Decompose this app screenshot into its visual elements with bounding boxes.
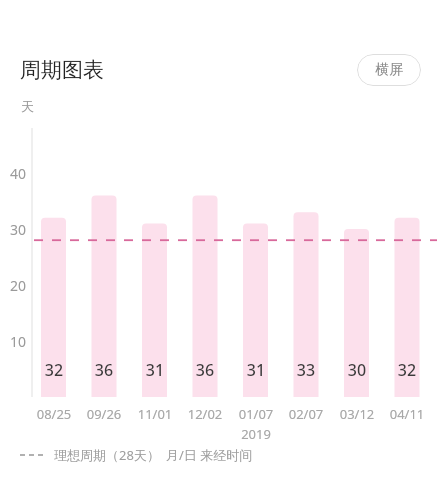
- staticText: 09/26: [77, 405, 131, 423]
- staticText: 20: [4, 276, 26, 295]
- button[interactable]: 横屏: [357, 54, 421, 86]
- staticText: 12/02: [178, 405, 232, 423]
- staticText: 04/11: [380, 405, 434, 423]
- staticText: 横屏: [375, 61, 403, 79]
- staticText: 月/日 来经时间: [166, 446, 253, 464]
- staticText: 31: [130, 359, 180, 381]
- staticText: 周期图表: [20, 57, 104, 83]
- staticText: 40: [4, 164, 26, 183]
- staticText: 11/01: [128, 405, 182, 423]
- staticText: 理想周期（28天）: [54, 446, 160, 464]
- staticText: 30: [4, 220, 26, 239]
- staticText: 02/07: [279, 405, 333, 423]
- staticText: 31: [231, 359, 281, 381]
- staticText: 03/12: [330, 405, 384, 423]
- staticText: 32: [29, 359, 79, 381]
- staticText: 08/25: [27, 405, 81, 423]
- staticText: 01/07: [229, 405, 283, 423]
- staticText: 天: [21, 98, 34, 114]
- staticText: 36: [79, 359, 129, 381]
- staticText: 33: [281, 359, 331, 381]
- staticText: 36: [180, 359, 230, 381]
- staticText: 32: [382, 359, 432, 381]
- staticText: 10: [4, 332, 26, 351]
- staticText: 30: [332, 359, 382, 381]
- staticText: 2019: [229, 425, 283, 443]
